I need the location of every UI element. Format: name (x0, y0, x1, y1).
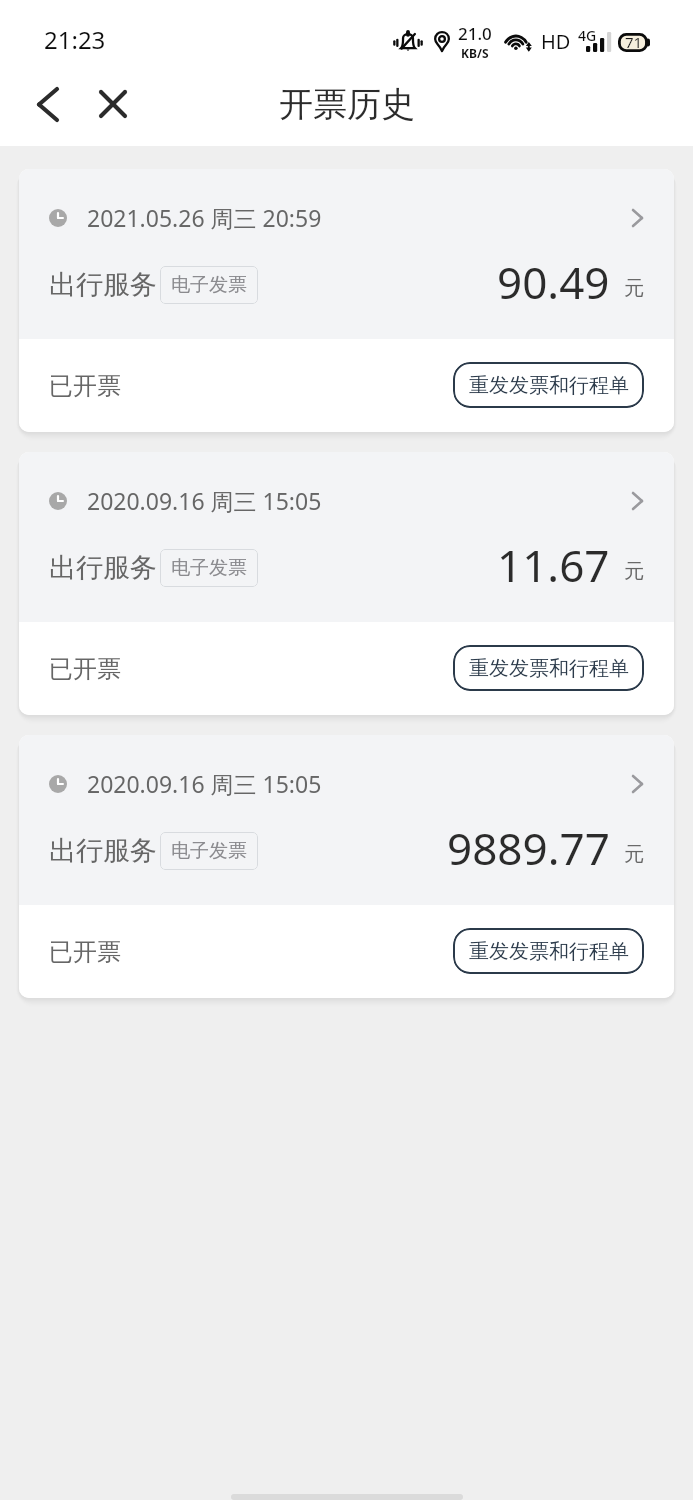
staticText: 电子发票 (171, 839, 247, 863)
staticText: 9889.77 (447, 818, 610, 878)
staticText: 元 (624, 842, 644, 867)
staticText: 重发发票和行程单 (469, 656, 629, 681)
staticText: 重发发票和行程单 (469, 939, 629, 964)
staticText: 90.49 (497, 252, 610, 312)
button[interactable]: 重发发票和行程单 (453, 928, 644, 974)
staticText: 电子发票 (171, 556, 247, 580)
button[interactable]: 2021.05.26 周三 20:59 (19, 169, 674, 339)
staticText: 11.67 (497, 535, 610, 595)
button[interactable]: 重发发票和行程单 (453, 645, 644, 691)
button[interactable]: 2020.09.16 周三 15:05 (19, 452, 674, 622)
other: Open invoice details (633, 776, 642, 792)
staticText: 71 (625, 32, 643, 52)
staticText: 重发发票和行程单 (469, 373, 629, 398)
staticText: HD (541, 28, 571, 55)
staticText: 出行服务 (49, 834, 157, 868)
other: Open invoice details (633, 493, 642, 509)
button[interactable]: 2020.09.16 周三 15:05 (19, 735, 674, 905)
staticText: 21.0 (458, 22, 492, 45)
staticText: 21:23 (44, 23, 106, 56)
staticText: 2021.05.26 周三 20:59 (87, 202, 322, 233)
other: Open invoice details (633, 210, 642, 226)
staticText: KB/S (461, 45, 489, 61)
button[interactable]: 重发发票和行程单 (453, 362, 644, 408)
button[interactable]: Close (85, 76, 141, 132)
staticText: 元 (624, 276, 644, 301)
staticText: 2020.09.16 周三 15:05 (87, 485, 322, 516)
staticText: 已开票 (49, 937, 121, 967)
staticText: 已开票 (49, 654, 121, 684)
button[interactable]: Back (20, 76, 76, 132)
staticText: 2020.09.16 周三 15:05 (87, 768, 322, 799)
staticText: 出行服务 (49, 268, 157, 302)
staticText: 元 (624, 559, 644, 584)
staticText: 已开票 (49, 371, 121, 401)
staticText: 电子发票 (171, 273, 247, 297)
staticText: 开票历史 (279, 83, 415, 126)
staticText: 出行服务 (49, 551, 157, 585)
staticText: 4G (578, 26, 597, 45)
